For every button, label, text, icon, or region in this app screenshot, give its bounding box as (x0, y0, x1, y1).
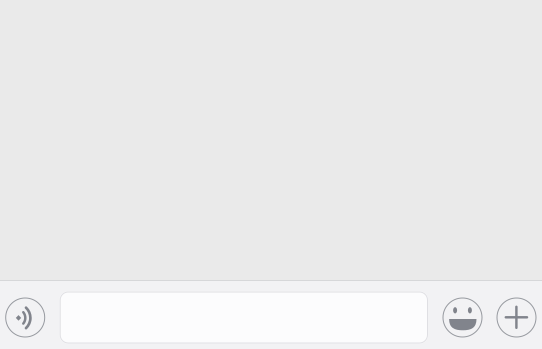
button[interactable]: Message (60, 291, 428, 343)
button[interactable]: Emoji (443, 298, 482, 337)
button[interactable]: Add attachment (497, 298, 536, 337)
button[interactable]: Record voice message (6, 298, 45, 337)
